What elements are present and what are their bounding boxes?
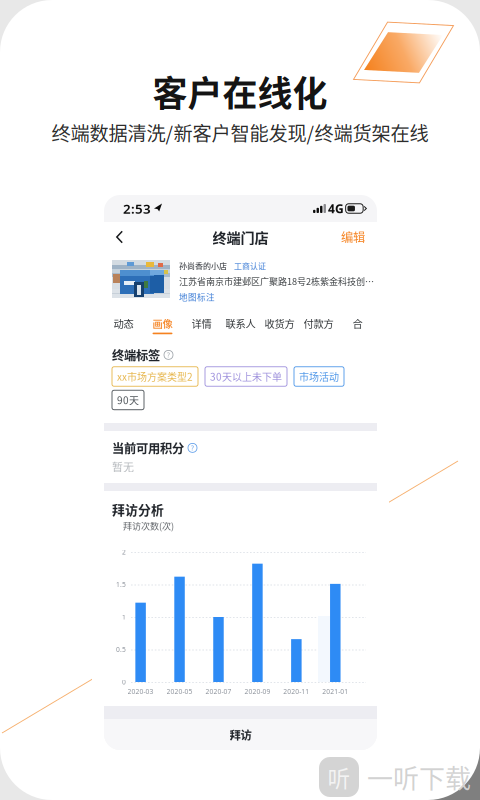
staticText: 一听下载 xyxy=(367,758,471,796)
staticText: 终端门店 xyxy=(212,227,268,247)
button[interactable]: 联系人 xyxy=(221,311,260,339)
staticText: 工商认证 xyxy=(234,260,266,272)
staticText: 合 xyxy=(352,316,362,331)
staticText: 终端数据清洗/新客户智能发现/终端货架在线 xyxy=(51,119,428,146)
staticText: xx市场方案类型2 xyxy=(117,369,193,384)
staticText: 编辑 xyxy=(341,228,365,246)
staticText: 联系人 xyxy=(225,316,255,331)
staticText: 4G xyxy=(325,200,344,216)
staticText: 孙尚香的小店 xyxy=(179,260,227,272)
staticText: 2020-09 xyxy=(244,687,270,696)
staticText: 终端标签 xyxy=(112,346,160,364)
staticText: 当前可用积分 xyxy=(112,439,184,457)
staticText: 2:53 xyxy=(123,200,151,217)
staticText: 2020-05 xyxy=(166,687,192,696)
staticText: 付款方 xyxy=(303,316,333,331)
staticText: 暂无 xyxy=(112,459,134,475)
staticText: 0 xyxy=(122,677,126,686)
button[interactable]: 画像 xyxy=(143,311,182,339)
button[interactable]: 详情 xyxy=(182,311,221,339)
staticText: 市场活动 xyxy=(299,369,339,384)
staticText: 画像 xyxy=(152,316,172,331)
button[interactable]: 编辑 xyxy=(329,220,377,254)
staticText: ? xyxy=(191,443,194,452)
button[interactable]: 合 xyxy=(338,311,377,339)
staticText: 地图标注 xyxy=(179,291,215,303)
staticText: 听 xyxy=(327,761,350,793)
staticText: 0.5 xyxy=(116,645,126,654)
button[interactable]: 返回 xyxy=(104,222,135,251)
staticText: 收货方 xyxy=(264,316,294,331)
staticText: 2 xyxy=(122,547,126,556)
staticText: 拜访次数(次) xyxy=(123,519,174,532)
staticText: 2020-07 xyxy=(205,687,231,696)
staticText: 拜访分析 xyxy=(112,500,164,518)
button[interactable]: 付款方 xyxy=(299,311,338,339)
staticText: 2020-03 xyxy=(128,687,154,696)
button[interactable]: 收货方 xyxy=(260,311,299,339)
staticText: 客户在线化 xyxy=(152,66,327,117)
staticText: 1 xyxy=(122,612,126,621)
staticText: 2021-01 xyxy=(322,687,348,696)
staticText: 1.5 xyxy=(116,580,126,589)
staticText: 2020-11 xyxy=(283,687,309,696)
staticText: 详情 xyxy=(191,316,211,331)
staticText: 动态 xyxy=(113,316,133,331)
button[interactable]: 动态 xyxy=(104,311,143,339)
staticText: 江苏省南京市建邺区广聚路18号2栋紫金科技创… xyxy=(179,275,374,288)
staticText: 拜访 xyxy=(229,726,251,743)
button[interactable]: 拜访 xyxy=(104,719,377,750)
staticText: 90天 xyxy=(117,393,139,407)
staticText: ? xyxy=(167,350,170,359)
staticText: 30天以上未下单 xyxy=(210,369,282,384)
